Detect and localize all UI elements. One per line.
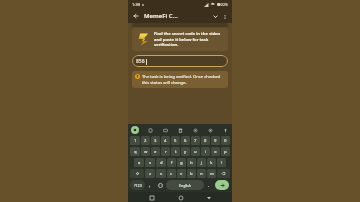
button[interactable]: 0: [221, 136, 230, 145]
button[interactable]: n: [197, 169, 206, 178]
staticText: u: [194, 149, 197, 155]
button[interactable]: t: [171, 147, 180, 156]
button[interactable]: j: [197, 158, 206, 167]
staticText: b: [190, 171, 193, 177]
staticText: 856: [136, 58, 145, 65]
staticText: 2: [144, 138, 147, 144]
staticText: r: [165, 149, 167, 155]
staticText: 22%: [221, 2, 228, 7]
staticText: j: [201, 160, 203, 166]
button[interactable]: r: [161, 147, 170, 156]
button[interactable]: x: [156, 169, 166, 178]
button[interactable]: i: [201, 147, 210, 156]
button[interactable]: More options: [220, 12, 229, 21]
button[interactable]: English: [166, 180, 204, 190]
staticText: p: [224, 149, 227, 155]
button[interactable]: 6: [181, 136, 190, 145]
staticText: 8: [204, 138, 207, 144]
button[interactable]: k: [207, 158, 216, 167]
button[interactable]: 7: [191, 136, 200, 145]
button[interactable]: Shift: [130, 169, 144, 178]
button[interactable]: ?123: [130, 180, 145, 190]
button[interactable]: 8: [201, 136, 210, 145]
staticText: l: [221, 160, 223, 166]
button[interactable]: Period: [205, 180, 213, 190]
button[interactable]: w: [141, 147, 150, 156]
button[interactable]: o: [211, 147, 220, 156]
staticText: i: [205, 149, 207, 155]
button[interactable]: Google Assistant: [131, 126, 139, 134]
button[interactable]: d: [156, 158, 166, 167]
staticText: 6: [184, 138, 187, 144]
staticText: ,: [149, 182, 151, 189]
staticText: s: [149, 160, 152, 166]
staticText: t: [175, 149, 177, 155]
button[interactable]: q: [130, 147, 140, 156]
staticText: a: [138, 160, 141, 166]
staticText: e: [154, 149, 157, 155]
staticText: d: [160, 160, 163, 166]
button[interactable]: 5: [171, 136, 180, 145]
staticText: English: [179, 183, 192, 188]
button[interactable]: Back: [131, 11, 141, 21]
button[interactable]: Comma: [146, 180, 154, 190]
button[interactable]: 9: [211, 136, 220, 145]
button[interactable]: g: [177, 158, 186, 167]
staticText: q: [134, 149, 137, 155]
button[interactable]: h: [187, 158, 196, 167]
button[interactable]: z: [145, 169, 155, 178]
staticText: x: [160, 171, 163, 177]
button[interactable]: Delete: [176, 126, 184, 134]
staticText: Find the secret code in the video and pa…: [154, 31, 225, 47]
button[interactable]: u: [191, 147, 200, 156]
button[interactable]: 3: [151, 136, 160, 145]
staticText: w: [144, 149, 148, 155]
button[interactable]: Theme: [206, 126, 214, 134]
staticText: z: [149, 171, 151, 177]
staticText: 5: [174, 138, 177, 144]
button[interactable]: y: [181, 147, 190, 156]
staticText: .: [208, 182, 210, 189]
staticText: m: [210, 171, 214, 177]
staticText: The task is being verified. Once checked…: [142, 74, 225, 85]
button[interactable]: Home: [176, 193, 185, 202]
staticText: v: [180, 171, 183, 177]
staticText: g: [180, 160, 183, 166]
staticText: n: [200, 171, 203, 177]
staticText: MemeFi C…: [144, 12, 178, 20]
button[interactable]: Send: [215, 180, 229, 190]
staticText: y: [184, 149, 187, 155]
button[interactable]: Back: [204, 193, 213, 202]
button[interactable]: l: [217, 158, 226, 167]
button[interactable]: Voice input: [221, 126, 229, 134]
button[interactable]: Settings: [191, 126, 199, 134]
button[interactable]: Clipboard: [146, 126, 154, 134]
button[interactable]: e: [151, 147, 160, 156]
staticText: h: [190, 160, 193, 166]
button[interactable]: 856: [132, 55, 228, 67]
button[interactable]: 2: [141, 136, 150, 145]
button[interactable]: GIF: [161, 126, 169, 134]
button[interactable]: b: [187, 169, 196, 178]
button[interactable]: m: [207, 169, 216, 178]
button[interactable]: s: [145, 158, 155, 167]
staticText: 4: [164, 138, 167, 144]
staticText: ?123: [134, 183, 142, 188]
button[interactable]: 4: [161, 136, 170, 145]
button[interactable]: Emoji: [155, 180, 165, 190]
button[interactable]: v: [177, 169, 186, 178]
staticText: 9: [214, 138, 217, 144]
staticText: 1:30: [132, 2, 140, 7]
button[interactable]: c: [167, 169, 176, 178]
button[interactable]: f: [167, 158, 176, 167]
button[interactable]: Recents: [147, 193, 156, 202]
button[interactable]: Backspace: [217, 169, 230, 178]
button[interactable]: a: [134, 158, 144, 167]
staticText: 1: [134, 138, 137, 144]
staticText: 0: [224, 138, 227, 144]
staticText: f: [171, 160, 173, 166]
staticText: 7: [194, 138, 197, 144]
button[interactable]: 1: [130, 136, 140, 145]
button[interactable]: p: [221, 147, 230, 156]
button[interactable]: Expand: [211, 12, 220, 21]
